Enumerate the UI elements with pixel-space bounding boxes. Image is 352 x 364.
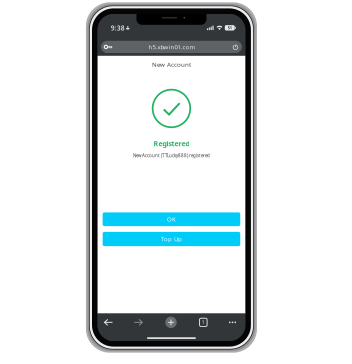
button[interactable]: Tabs — [192, 313, 215, 332]
staticText: New Account — [152, 60, 191, 69]
staticText: New Account (TTLucky888) registered — [133, 153, 210, 159]
staticText: 51 — [228, 25, 232, 30]
button[interactable]: New Tab — [159, 313, 182, 332]
button[interactable]: Address — [101, 41, 242, 53]
staticText: Top Up — [161, 235, 182, 243]
staticText: 1 — [202, 319, 205, 326]
staticText: Registered — [153, 139, 189, 148]
button[interactable]: Top Up — [103, 232, 240, 246]
button[interactable]: Forward — [127, 313, 150, 332]
button[interactable]: More — [221, 313, 244, 332]
staticText: OK — [167, 215, 176, 223]
staticText: h5.xbwin01.com — [148, 43, 194, 51]
button[interactable]: Back — [97, 313, 120, 332]
button[interactable]: OK — [103, 212, 240, 226]
staticText: 9:38 — [111, 23, 125, 32]
